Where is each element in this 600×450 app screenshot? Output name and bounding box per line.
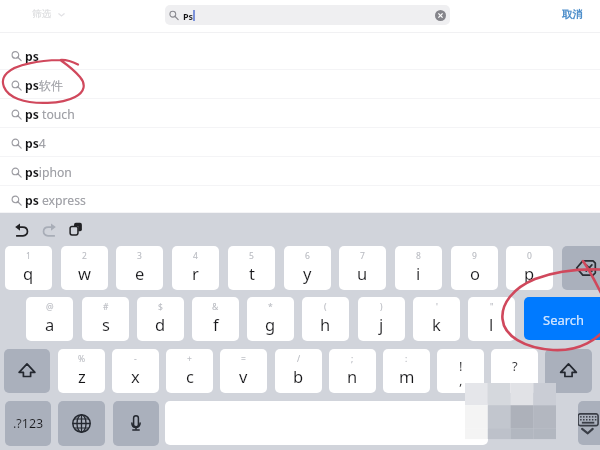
staticText: psiphon <box>25 164 72 181</box>
staticText: y <box>303 262 312 284</box>
staticText: # <box>103 301 109 313</box>
button[interactable]: Backspace <box>562 246 600 290</box>
button[interactable]: 2 <box>61 246 108 290</box>
staticText: , <box>459 371 463 389</box>
staticText: k <box>432 313 441 335</box>
staticText: d <box>155 313 166 335</box>
button[interactable]: 5 <box>228 246 275 290</box>
staticText: ' <box>436 301 438 313</box>
staticText: $ <box>158 301 163 313</box>
staticText: ? <box>512 357 518 375</box>
button[interactable]: Redo <box>42 222 57 237</box>
button[interactable]: Search <box>524 297 600 340</box>
staticText: 4 <box>193 250 198 262</box>
button[interactable]: Switch language <box>58 401 105 446</box>
button[interactable]: ps4 <box>0 128 600 157</box>
button[interactable]: Ps <box>165 5 450 25</box>
button[interactable]: 筛选 <box>32 8 65 20</box>
staticText: s <box>102 313 110 335</box>
button[interactable]: + <box>166 349 213 393</box>
button[interactable]: 1 <box>5 246 52 290</box>
button[interactable]: ps软件 <box>0 70 600 99</box>
staticText: 2 <box>82 250 87 262</box>
button[interactable]: 4 <box>172 246 219 290</box>
staticText: r <box>192 262 199 284</box>
staticText: . <box>513 371 517 389</box>
button[interactable]: % <box>58 349 105 393</box>
button[interactable]: = <box>220 349 267 393</box>
staticText: i <box>416 262 421 284</box>
button[interactable]: ? <box>491 349 538 393</box>
staticText: w <box>78 262 91 284</box>
button[interactable]: : <box>383 349 430 393</box>
staticText: o <box>470 262 480 284</box>
button[interactable]: & <box>192 297 239 341</box>
button[interactable]: Clear text <box>435 10 446 21</box>
button[interactable]: ps touch <box>0 99 600 128</box>
button[interactable]: Space <box>165 401 488 445</box>
button[interactable]: $ <box>137 297 184 341</box>
button[interactable]: Shift <box>4 349 50 393</box>
button[interactable]: ps express <box>0 186 600 213</box>
staticText: 6 <box>305 250 310 262</box>
staticText: a <box>45 313 55 335</box>
staticText: ps express <box>25 192 86 209</box>
button[interactable]: * <box>247 297 294 341</box>
button[interactable]: / <box>275 349 322 393</box>
button[interactable]: @ <box>26 297 73 341</box>
staticText: x <box>131 365 140 387</box>
button[interactable]: 取消 <box>562 8 583 21</box>
button[interactable]: ( <box>302 297 349 341</box>
button[interactable]: ps <box>0 33 600 70</box>
button[interactable]: Dictate <box>113 401 159 446</box>
button[interactable]: psiphon <box>0 157 600 186</box>
staticText: 9 <box>472 250 477 262</box>
staticText: % <box>78 353 86 365</box>
staticText: t <box>249 262 255 284</box>
button[interactable]: ; <box>329 349 376 393</box>
button[interactable]: " <box>468 297 515 341</box>
button[interactable]: Shift right <box>545 349 592 393</box>
button[interactable]: 9 <box>451 246 498 290</box>
staticText: 1 <box>26 250 31 262</box>
staticText: g <box>265 313 276 335</box>
button[interactable]: ) <box>358 297 405 341</box>
staticText: ; <box>351 353 354 365</box>
staticText: p <box>524 262 535 284</box>
button[interactable]: .?123 <box>5 401 51 446</box>
staticText: 3 <box>137 250 142 262</box>
staticText: * <box>268 301 273 313</box>
button[interactable]: 3 <box>116 246 163 290</box>
staticText: 8 <box>416 250 421 262</box>
staticText: q <box>23 262 34 284</box>
staticText: h <box>320 313 331 335</box>
button[interactable]: 8 <box>395 246 442 290</box>
button[interactable]: 7 <box>339 246 386 290</box>
button[interactable]: - <box>112 349 159 393</box>
staticText: @ <box>46 301 54 313</box>
staticText: c <box>186 365 194 387</box>
staticText: ps <box>25 48 39 65</box>
staticText: j <box>379 313 384 335</box>
button[interactable]: ' <box>413 297 460 341</box>
staticText: 筛选 <box>32 8 51 20</box>
staticText: & <box>212 301 219 313</box>
button[interactable]: Paste <box>69 222 83 236</box>
staticText: ps4 <box>25 135 46 152</box>
staticText: ! <box>459 357 463 375</box>
staticText: m <box>399 365 415 387</box>
staticText: Search <box>543 311 585 329</box>
staticText: - <box>134 353 137 365</box>
staticText: + <box>187 353 192 365</box>
button[interactable]: Hide keyboard <box>578 401 600 445</box>
staticText: 0 <box>527 250 532 262</box>
staticText: 7 <box>360 250 365 262</box>
staticText: n <box>347 365 358 387</box>
button[interactable]: 6 <box>284 246 331 290</box>
button[interactable]: 0 <box>506 246 553 290</box>
staticText: e <box>135 262 145 284</box>
button[interactable]: # <box>82 297 129 341</box>
staticText: ( <box>324 301 327 313</box>
button[interactable]: Undo <box>14 222 29 237</box>
button[interactable]: ! <box>437 349 484 393</box>
